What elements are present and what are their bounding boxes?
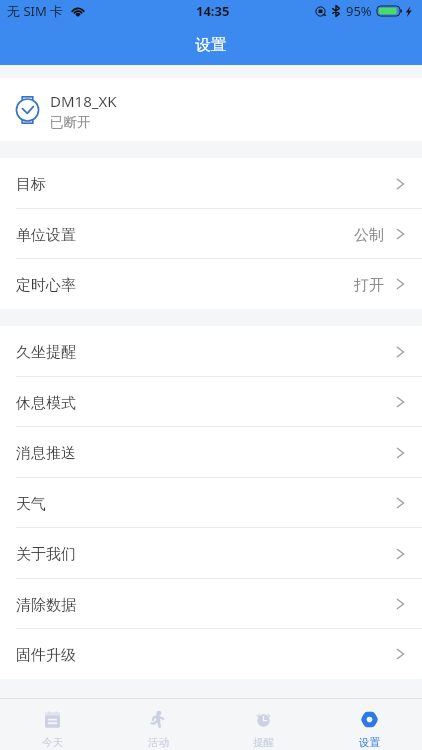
staticText: 提醒 bbox=[253, 736, 274, 749]
staticText: 设置 bbox=[359, 736, 380, 749]
staticText: 目标 bbox=[16, 175, 46, 194]
button[interactable]: 休息模式 bbox=[0, 377, 422, 427]
button[interactable]: 活动 bbox=[106, 699, 211, 750]
staticText: 今天 bbox=[42, 736, 63, 749]
staticText: 95% bbox=[346, 2, 372, 20]
staticText: 公制 bbox=[354, 226, 384, 245]
button[interactable]: 设置 bbox=[317, 699, 422, 750]
button[interactable]: 定时心率 bbox=[0, 259, 422, 309]
staticText: 定时心率 bbox=[16, 276, 76, 295]
staticText: 无 SIM 卡 bbox=[7, 2, 64, 20]
button[interactable]: 目标 bbox=[0, 158, 422, 209]
button[interactable]: 提醒 bbox=[211, 699, 316, 750]
staticText: DM18_XK bbox=[50, 91, 117, 111]
staticText: 关于我们 bbox=[16, 545, 76, 564]
staticText: 单位设置 bbox=[16, 226, 76, 245]
staticText: 清除数据 bbox=[16, 596, 76, 615]
button[interactable]: 清除数据 bbox=[0, 579, 422, 629]
staticText: 固件升级 bbox=[16, 646, 76, 665]
button[interactable]: 久坐提醒 bbox=[0, 326, 422, 377]
button[interactable]: DM18_XK bbox=[0, 78, 422, 141]
button[interactable]: 关于我们 bbox=[0, 528, 422, 579]
staticText: 休息模式 bbox=[16, 394, 76, 413]
staticText: 消息推送 bbox=[16, 444, 76, 463]
button[interactable]: 今天 bbox=[0, 699, 105, 750]
staticText: 天气 bbox=[16, 495, 46, 514]
staticText: 已断开 bbox=[50, 114, 91, 131]
staticText: 打开 bbox=[354, 276, 384, 295]
staticText: 久坐提醒 bbox=[16, 343, 76, 362]
button[interactable]: 天气 bbox=[0, 478, 422, 528]
staticText: 14:35 bbox=[196, 2, 230, 20]
staticText: 设置 bbox=[0, 35, 422, 55]
button[interactable]: 固件升级 bbox=[0, 629, 422, 679]
staticText: 活动 bbox=[148, 736, 169, 749]
button[interactable]: 单位设置 bbox=[0, 209, 422, 259]
button[interactable]: 消息推送 bbox=[0, 427, 422, 478]
